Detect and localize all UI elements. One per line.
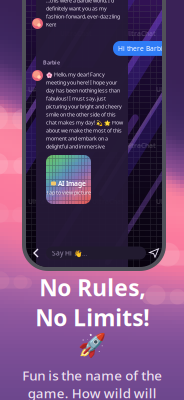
staticText: Fun is the name of the game. How wild wi… xyxy=(22,366,162,400)
staticText: UltraChat xyxy=(28,197,60,206)
button[interactable]: Back xyxy=(29,246,43,260)
staticText: No Rules, No Limits! 🚀 xyxy=(35,272,149,358)
staticText: Tap to view picture xyxy=(46,189,91,196)
staticText: UltraChat xyxy=(28,85,60,94)
staticText: 🌸 Hello, my dear! Fancy meeting you here… xyxy=(46,71,124,206)
staticText: Say Hi 👋… xyxy=(52,249,87,257)
staticText: UltraChat xyxy=(124,29,156,38)
staticText: UltraChat xyxy=(92,85,124,94)
staticText: UltraChat xyxy=(124,141,156,150)
staticText: UltraChat xyxy=(156,85,184,94)
staticText: UltraChat xyxy=(156,197,184,206)
staticText: Hi there Barbie! xyxy=(118,44,169,53)
staticText: UltraChat xyxy=(60,141,92,150)
staticText: UltraChat xyxy=(60,253,92,262)
staticText: Barbie xyxy=(43,59,60,66)
button[interactable]: Hi there Barbie! xyxy=(113,41,174,56)
button[interactable]: AI Image xyxy=(46,155,91,204)
button[interactable]: Say Hi 👋… xyxy=(46,246,146,259)
staticText: AI Image xyxy=(58,179,86,188)
staticText: …this were a Barbie world, I'd definitel… xyxy=(46,0,120,28)
button[interactable]: Send xyxy=(149,248,159,258)
